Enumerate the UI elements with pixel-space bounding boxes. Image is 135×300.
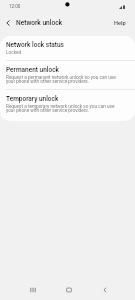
- staticText: 12:00: [9, 4, 21, 9]
- staticText: Permanent unlock: [6, 66, 59, 74]
- staticText: Help: [114, 20, 126, 27]
- staticText: Network lock status: [6, 41, 64, 49]
- staticText: Locked: [6, 50, 22, 56]
- button[interactable]: Network lock status: [0, 36, 135, 60]
- staticText: Temporary unlock: [6, 95, 59, 103]
- button[interactable]: Temporary unlock: [0, 90, 135, 121]
- button[interactable]: Navigate up: [0, 13, 16, 33]
- button[interactable]: Recent apps: [15, 279, 51, 300]
- staticText: Request a permanent network unlock so yo…: [6, 75, 121, 85]
- button[interactable]: Help: [105, 16, 135, 31]
- button[interactable]: Home: [51, 279, 87, 300]
- button[interactable]: Back: [87, 279, 123, 300]
- staticText: Request a temporary network unlock so yo…: [6, 104, 121, 114]
- staticText: Network unlock: [16, 19, 63, 27]
- button[interactable]: Permanent unlock: [0, 61, 135, 89]
